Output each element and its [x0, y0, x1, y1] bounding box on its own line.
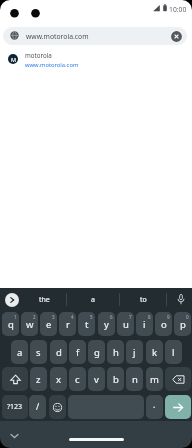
button[interactable]: www.motorola.com	[3, 27, 187, 45]
button[interactable]: h	[107, 340, 124, 364]
button[interactable]: M	[0, 48, 192, 70]
staticText: r	[66, 318, 70, 331]
button[interactable]: m	[146, 367, 163, 391]
button[interactable]	[68, 395, 144, 419]
staticText: 7	[129, 314, 132, 320]
button[interactable]: z	[30, 367, 47, 391]
button[interactable]: u	[117, 312, 134, 336]
staticText: u	[123, 318, 129, 331]
staticText: the	[39, 295, 50, 305]
staticText: 10:00	[169, 5, 187, 14]
staticText: /	[36, 401, 40, 413]
staticText: 4	[71, 314, 74, 320]
staticText: w	[26, 318, 34, 331]
button[interactable]: w	[21, 312, 38, 336]
staticText: l	[172, 346, 175, 359]
button[interactable]: t	[78, 312, 95, 336]
button[interactable]: d	[50, 340, 67, 364]
staticText: v	[94, 373, 99, 386]
button[interactable]: x	[50, 367, 67, 391]
button[interactable]: l	[165, 340, 182, 364]
staticText: p	[180, 318, 186, 331]
staticText: n	[132, 373, 138, 386]
button[interactable]	[165, 395, 191, 419]
button[interactable]: v	[88, 367, 105, 391]
staticText: www.motorola.com	[25, 61, 79, 69]
button[interactable]: k	[146, 340, 163, 364]
staticText: s	[36, 346, 41, 359]
button[interactable]: the	[22, 292, 66, 307]
staticText: 0	[186, 314, 189, 320]
staticText: m	[150, 373, 159, 386]
staticText: b	[113, 373, 119, 386]
staticText: j	[133, 346, 136, 359]
button[interactable]: .	[146, 395, 163, 419]
staticText: o	[161, 318, 167, 331]
button[interactable]: f	[69, 340, 86, 364]
button[interactable]	[177, 294, 185, 305]
button[interactable]: g	[88, 340, 105, 364]
button[interactable]: i	[136, 312, 153, 336]
button[interactable]: o	[155, 312, 172, 336]
staticText: i	[143, 318, 146, 331]
staticText: ?123	[7, 402, 23, 412]
staticText: 9	[167, 314, 170, 320]
button[interactable]	[5, 293, 19, 307]
staticText: g	[94, 346, 100, 359]
button[interactable]: b	[107, 367, 124, 391]
button[interactable]	[10, 433, 19, 439]
staticText: a	[17, 346, 23, 359]
staticText: 3	[52, 314, 55, 320]
staticText: M	[11, 56, 16, 63]
staticText: 1	[14, 314, 17, 320]
staticText: k	[152, 346, 158, 359]
button[interactable]: /	[29, 395, 46, 419]
button[interactable]	[49, 395, 66, 419]
staticText: 8	[148, 314, 151, 320]
staticText: h	[113, 346, 119, 359]
button[interactable]: j	[126, 340, 143, 364]
button[interactable]: c	[69, 367, 86, 391]
button[interactable]: e	[40, 312, 57, 336]
staticText: .	[153, 399, 156, 411]
staticText: z	[36, 373, 41, 386]
staticText: 2	[33, 314, 36, 320]
button[interactable]: y	[98, 312, 115, 336]
staticText: motorola	[25, 51, 52, 59]
button[interactable]: s	[30, 340, 47, 364]
staticText: 5	[90, 314, 93, 320]
button[interactable]: ?123	[2, 395, 28, 419]
staticText: y	[104, 318, 109, 331]
staticText: e	[46, 318, 52, 331]
button[interactable]	[2, 367, 28, 391]
button[interactable]: to	[120, 292, 166, 307]
staticText: to	[140, 295, 147, 305]
staticText: d	[56, 346, 62, 359]
button[interactable]: p	[174, 312, 191, 336]
staticText: t	[85, 318, 89, 331]
staticText: 6	[110, 314, 113, 320]
staticText: c	[75, 373, 80, 386]
button[interactable]: q	[2, 312, 19, 336]
button[interactable]: a	[67, 292, 119, 307]
staticText: x	[56, 373, 62, 386]
staticText: q	[8, 318, 14, 331]
button[interactable]: r	[59, 312, 76, 336]
staticText: a	[91, 295, 95, 305]
staticText: www.motorola.com	[26, 32, 89, 41]
button[interactable]	[165, 367, 191, 391]
staticText: f	[76, 346, 80, 359]
button[interactable]: n	[126, 367, 143, 391]
button[interactable]: a	[11, 340, 28, 364]
button[interactable]	[171, 31, 182, 42]
